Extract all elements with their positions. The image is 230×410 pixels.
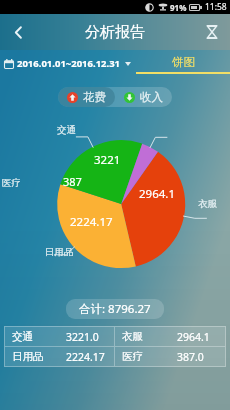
staticText: 日用品 [45,246,74,258]
staticText: 花费 [83,90,106,104]
staticText: 91% [170,2,187,13]
staticText: 2224.17 [70,214,113,230]
staticText: 3221 [94,152,121,168]
button[interactable]: 2016.01.01~2016.12.31 [4,54,131,73]
button[interactable]: 衣服 [115,327,170,346]
staticText: 2016.01.01~2016.12.31 [17,57,121,70]
staticText: 日用品 [12,350,44,363]
staticText: 衣服 [198,198,217,210]
staticText: 衣服 [122,330,143,343]
staticText: 收入 [140,90,163,104]
button[interactable]: Back [0,14,36,50]
button[interactable]: 收入 [115,87,172,107]
staticText: 饼图 [172,55,195,69]
button[interactable]: 花费 [58,87,115,107]
staticText: 11:58 [205,1,227,13]
staticText: 2964.1 [139,186,175,202]
staticText: 分析报告 [85,23,145,42]
button[interactable]: 交通 [5,327,59,346]
staticText: 387 [63,174,82,189]
button[interactable]: 饼图 [136,53,230,74]
staticText: 医疗 [2,177,21,189]
staticText: 医疗 [122,350,143,363]
button[interactable]: 3221.0 [59,327,114,346]
staticText: 2964.1 [177,330,210,344]
button[interactable]: 387.0 [170,347,225,366]
staticText: 交通 [57,124,76,136]
staticText: 387.0 [177,350,204,364]
button[interactable]: 日用品 [5,347,59,366]
staticText: 交通 [12,330,33,343]
staticText: 3221.0 [66,330,99,344]
staticText: 合计: 8796.27 [79,301,151,317]
button[interactable]: 2224.17 [59,347,114,366]
button[interactable]: 合计: 8796.27 [66,299,164,319]
button[interactable]: 2964.1 [170,327,225,346]
button[interactable]: History [194,14,230,50]
button[interactable]: 医疗 [115,347,170,366]
staticText: 2224.17 [66,350,105,364]
